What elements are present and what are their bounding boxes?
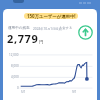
- staticText: 円: [39, 39, 44, 45]
- staticText: 9/1: [72, 90, 77, 94]
- button[interactable]: 入金する: [78, 25, 93, 40]
- staticText: 150万ユーザーが運用中!: [27, 13, 76, 19]
- staticText: 2,779: [7, 31, 39, 46]
- staticText: 入金する: [59, 26, 73, 30]
- staticText: 8,000: [11, 64, 19, 68]
- staticText: 運用中の残高: [8, 26, 30, 31]
- button[interactable]: 150万ユーザーが運用中!: [24, 13, 78, 19]
- staticText: 0: [17, 86, 19, 90]
- staticText: 4,000: [11, 75, 19, 79]
- staticText: 12,000: [9, 53, 19, 57]
- staticText: 2024年10月1日時点: [33, 27, 62, 31]
- staticText: 5/1: [21, 90, 26, 94]
